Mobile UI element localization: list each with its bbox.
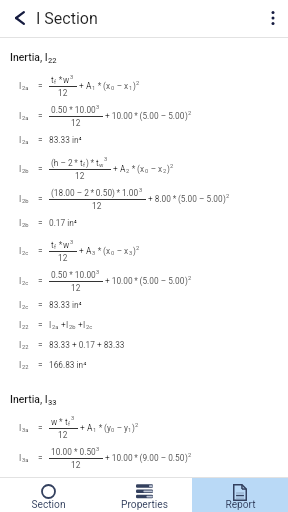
staticText: I: [19, 164, 22, 174]
staticText: * (: [96, 246, 106, 256]
staticText: 2c: [22, 280, 29, 287]
staticText: 1: [93, 427, 97, 434]
staticText: –: [115, 246, 124, 256]
staticText: 2: [170, 163, 174, 170]
staticText: 12: [71, 283, 81, 293]
staticText: * (: [96, 81, 106, 91]
staticText: 3a: [22, 427, 29, 434]
staticText: t: [96, 158, 99, 168]
staticText: 0: [111, 250, 115, 257]
staticText: 0.17 in⁴: [49, 218, 77, 228]
staticText: 2b: [22, 168, 29, 175]
staticText: Inertia, I: [10, 51, 48, 63]
staticText: A: [87, 423, 93, 433]
staticText: I: [19, 360, 22, 370]
staticText: * (: [97, 423, 107, 433]
staticText: ): [185, 453, 188, 463]
staticText: t: [51, 75, 54, 85]
staticText: (18.00 – 2 * 0.50) * 1.00: [51, 188, 139, 198]
staticText: 3: [96, 446, 100, 453]
staticText: 166.83 in⁴: [49, 360, 87, 370]
staticText: A: [120, 164, 126, 174]
staticText: 2b: [22, 222, 29, 229]
staticText: =: [38, 453, 43, 463]
staticText: f: [68, 421, 71, 428]
staticText: 2a: [22, 115, 29, 122]
staticText: 2: [188, 452, 192, 459]
staticText: 0.50 * 10.00: [51, 270, 96, 280]
staticText: 12: [71, 118, 81, 128]
staticText: Section: [31, 499, 66, 511]
staticText: Properties: [121, 499, 168, 511]
staticText: 2a: [22, 139, 29, 146]
staticText: A: [86, 246, 92, 256]
staticText: I: [19, 135, 22, 145]
staticText: 83.33 in⁴: [49, 135, 82, 145]
staticText: =: [38, 276, 43, 286]
staticText: x: [106, 246, 111, 256]
staticText: I: [19, 276, 22, 286]
button[interactable]: Section: [0, 478, 96, 512]
staticText: 22: [22, 364, 29, 371]
staticText: 0: [145, 168, 149, 175]
staticText: 22: [48, 56, 57, 65]
staticText: w *: [51, 417, 65, 427]
staticText: =: [38, 340, 43, 350]
staticText: w: [99, 162, 104, 169]
staticText: I: [19, 320, 22, 330]
staticText: 2: [126, 168, 130, 175]
staticText: 83.33 + 0.17 + 83.33: [49, 340, 125, 350]
staticText: x: [140, 164, 145, 174]
staticText: x: [106, 81, 111, 91]
staticText: 2: [188, 110, 192, 117]
staticText: Inertia, I: [10, 393, 48, 405]
staticText: =: [38, 423, 43, 433]
staticText: 2: [163, 168, 167, 175]
button[interactable]: More options: [259, 4, 287, 32]
staticText: 12: [58, 430, 68, 440]
staticText: + 8.00 * (5.00 – 5.00: [148, 194, 223, 204]
staticText: (h – 2 *: [51, 158, 80, 168]
staticText: t: [51, 240, 54, 250]
staticText: 0.50 * 10.00: [51, 105, 96, 115]
staticText: t: [80, 158, 83, 168]
staticText: =: [38, 246, 43, 256]
staticText: f: [54, 244, 57, 251]
staticText: y: [107, 423, 111, 433]
staticText: –: [149, 164, 158, 174]
staticText: +: [79, 81, 86, 91]
staticText: 3: [129, 250, 133, 257]
staticText: w: [63, 240, 70, 250]
staticText: *: [57, 240, 63, 250]
staticText: 2a: [22, 85, 29, 92]
staticText: I: [19, 340, 22, 350]
staticText: 2c: [86, 324, 93, 331]
staticText: f: [83, 162, 86, 169]
staticText: * (: [130, 164, 140, 174]
staticText: 3: [70, 239, 74, 246]
staticText: 3: [71, 415, 75, 422]
staticText: +: [80, 423, 87, 433]
staticText: =: [38, 81, 43, 91]
staticText: 0: [111, 85, 115, 92]
staticText: I: [83, 320, 86, 330]
staticText: +: [59, 320, 66, 330]
staticText: =: [38, 111, 43, 121]
button[interactable]: Back: [6, 4, 34, 32]
staticText: 2: [226, 193, 230, 200]
staticText: =: [38, 360, 43, 370]
staticText: 3: [70, 74, 74, 81]
staticText: ) *: [86, 158, 96, 168]
staticText: ): [185, 111, 188, 121]
button[interactable]: Properties: [96, 478, 192, 512]
staticText: ): [133, 81, 136, 91]
staticText: Report: [225, 499, 256, 511]
button[interactable]: Report: [192, 478, 288, 512]
staticText: 2b: [22, 198, 29, 205]
staticText: 22: [22, 344, 29, 351]
staticText: I: [19, 453, 22, 463]
staticText: 12: [92, 201, 102, 211]
staticText: *: [57, 75, 63, 85]
staticText: –: [115, 423, 124, 433]
staticText: 12: [71, 460, 81, 470]
